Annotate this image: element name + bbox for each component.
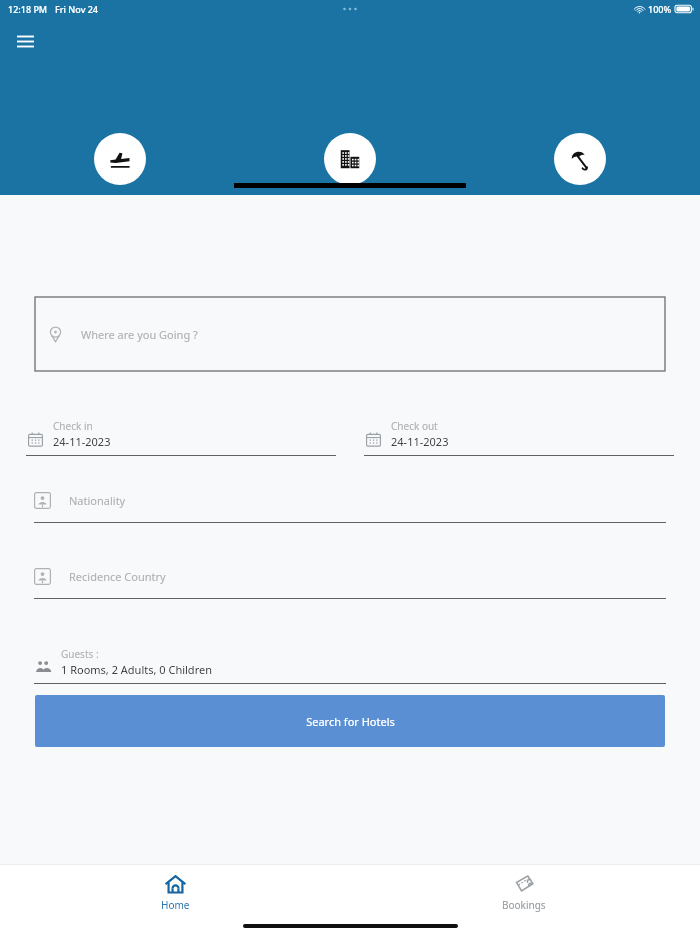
button[interactable]: Residence Country	[34, 568, 666, 599]
button[interactable]: Guests :	[34, 647, 666, 684]
staticText: 12:18 PM	[8, 3, 48, 15]
staticText: Check in	[53, 419, 93, 433]
staticText: Where are you Going ?	[81, 327, 198, 342]
staticText: 24-11-2023	[53, 434, 111, 449]
staticText: Fri Nov 24	[55, 3, 99, 15]
staticText: 100%	[648, 3, 672, 15]
staticText: Home	[161, 898, 190, 912]
button[interactable]: Flights	[94, 133, 146, 185]
button[interactable]: Bookings	[479, 865, 569, 934]
button[interactable]: Menu	[8, 24, 42, 58]
button[interactable]: Check out	[364, 419, 674, 456]
staticText: Search for Hotels	[306, 714, 395, 729]
staticText: 1 Rooms, 2 Adults, 0 Children	[61, 662, 212, 677]
staticText: Check out	[391, 419, 438, 433]
button[interactable]: Check in	[26, 419, 336, 456]
button[interactable]: Home	[135, 865, 215, 934]
button[interactable]: Nationality	[34, 492, 666, 523]
staticText: Nationality	[69, 493, 126, 508]
button[interactable]: Search for Hotels	[35, 695, 665, 747]
staticText: Bookings	[502, 898, 546, 912]
staticText: Guests :	[61, 647, 99, 661]
button[interactable]: Holidays	[554, 133, 606, 185]
staticText: 24-11-2023	[391, 434, 449, 449]
button[interactable]: Where are you Going ?	[35, 297, 665, 371]
button[interactable]: Hotels	[324, 133, 376, 185]
staticText: Recidence Country	[69, 569, 166, 584]
